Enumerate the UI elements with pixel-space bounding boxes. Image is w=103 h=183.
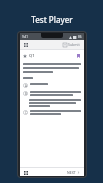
staticText: Submit (68, 42, 80, 47)
button[interactable]: NEXT (66, 169, 81, 176)
button[interactable]: C (23, 110, 81, 115)
staticText: Test Player (31, 14, 73, 25)
staticText: B (25, 92, 27, 96)
button[interactable]: Submit (62, 41, 81, 48)
button[interactable]: B (23, 91, 81, 96)
button[interactable]: Menu (23, 42, 29, 48)
button[interactable]: Bookmark (76, 53, 81, 58)
button[interactable]: Q1 (23, 53, 81, 58)
staticText: 86 (78, 35, 82, 39)
staticText: 9:41 (22, 35, 28, 39)
staticText: NEXT (67, 170, 76, 175)
staticText: Q1 (29, 53, 35, 58)
staticText: A (25, 84, 27, 88)
button[interactable] (23, 99, 81, 107)
button[interactable]: Grid view (23, 170, 28, 175)
staticText: C (25, 111, 27, 115)
button[interactable]: A (23, 83, 81, 88)
